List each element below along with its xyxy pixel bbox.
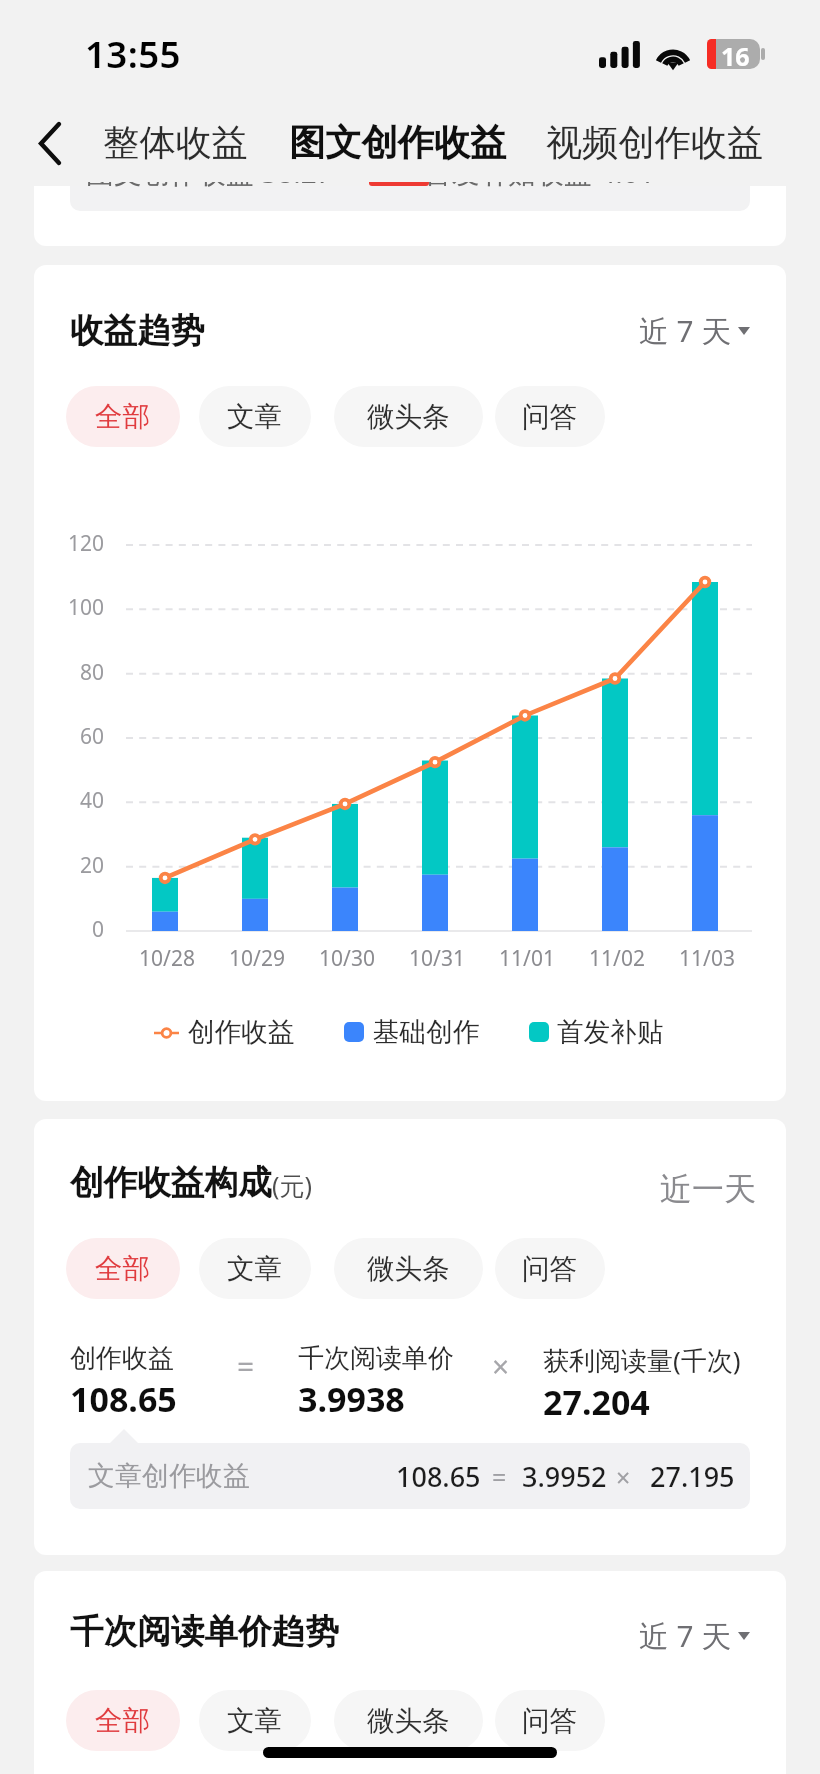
button[interactable]: 文章 [199, 1690, 311, 1751]
staticText: 近 7 天 [639, 1615, 732, 1656]
button[interactable]: 问答 [495, 1238, 605, 1299]
staticText: 40 [40, 786, 104, 815]
staticText: 微头条 [367, 399, 450, 434]
button[interactable]: 微头条 [334, 386, 483, 447]
button[interactable]: 近一天 [654, 1163, 762, 1215]
staticText: 10/31 [387, 944, 487, 973]
staticText: 问答 [522, 1703, 578, 1738]
staticText: 0 [40, 915, 104, 944]
staticText: 10/29 [207, 944, 307, 973]
staticText: 108.65 [70, 1376, 177, 1422]
button[interactable]: 全部 [66, 1238, 180, 1299]
staticText: 首发补贴 [557, 1015, 664, 1049]
button[interactable]: 全部 [66, 386, 180, 447]
staticText: 微头条 [367, 1251, 450, 1286]
staticText: 3.9938 [298, 1376, 405, 1422]
button[interactable]: 图文创作收益 [279, 110, 517, 176]
staticText: × [492, 1346, 510, 1387]
button[interactable]: 全部 [66, 1690, 180, 1751]
staticText: 27.195 [650, 1458, 735, 1495]
staticText: 10/30 [297, 944, 397, 973]
staticText: 20 [40, 851, 104, 880]
button[interactable]: 整体收益 [93, 110, 258, 176]
button[interactable]: 问答 [495, 1690, 605, 1751]
staticText: 创作收益构成 [70, 1162, 272, 1204]
staticText: 3.9952 [522, 1458, 607, 1495]
staticText: 视频创作收益 [546, 120, 764, 166]
staticText: 文章创作收益 [88, 1459, 250, 1493]
staticText: 近 7 天 [639, 310, 732, 351]
staticText: 图文创作收益 [289, 120, 507, 166]
staticText: 获利阅读量(千次) [543, 1342, 741, 1378]
staticText: (元) [272, 1168, 313, 1202]
button[interactable]: 文章 [199, 386, 311, 447]
staticText: = [492, 1460, 507, 1494]
staticText: 文章 [227, 1251, 283, 1286]
button[interactable]: 近 7 天 [633, 302, 756, 359]
staticText: 整体收益 [103, 120, 248, 166]
staticText: 问答 [522, 399, 578, 434]
staticText: 图文创作收益 38.27 [86, 182, 333, 191]
staticText: 基础创作 [373, 1015, 480, 1049]
staticText: 13:55 [85, 29, 181, 79]
staticText: 文章 [227, 399, 283, 434]
staticText: 11/02 [567, 944, 667, 973]
staticText: 收益趋势 [70, 310, 205, 352]
staticText: 全部 [95, 1703, 151, 1738]
staticText: 千次阅读单价趋势 [70, 1611, 339, 1653]
staticText: 60 [40, 722, 104, 751]
button[interactable]: 问答 [495, 386, 605, 447]
staticText: 80 [40, 658, 104, 687]
staticText: 16 [721, 39, 750, 69]
button[interactable]: 微头条 [334, 1238, 483, 1299]
staticText: 全部 [95, 1251, 151, 1286]
staticText: 创作收益 [70, 1342, 174, 1375]
staticText: 120 [40, 529, 104, 558]
button[interactable]: 视频创作收益 [536, 110, 774, 176]
staticText: 文章 [227, 1703, 283, 1738]
staticText: × [616, 1460, 631, 1494]
staticText: = [237, 1346, 255, 1387]
staticText: 千次阅读单价 [298, 1342, 454, 1375]
button[interactable]: Back [10, 103, 90, 183]
staticText: 11/03 [657, 944, 757, 973]
button[interactable]: 近 7 天 [633, 1607, 756, 1664]
button[interactable]: 微头条 [334, 1690, 483, 1751]
staticText: 108.65 [396, 1458, 481, 1495]
staticText: 全部 [95, 399, 151, 434]
staticText: 近一天 [660, 1169, 756, 1209]
button[interactable]: 文章 [199, 1238, 311, 1299]
staticText: 27.204 [543, 1379, 650, 1425]
staticText: 10/28 [117, 944, 217, 973]
staticText: 微头条 [367, 1703, 450, 1738]
staticText: 首发补贴收益 4.01 [424, 182, 655, 191]
staticText: 问答 [522, 1251, 578, 1286]
staticText: 11/01 [477, 944, 577, 973]
staticText: 100 [40, 593, 104, 622]
staticText: 创作收益 [188, 1015, 295, 1049]
